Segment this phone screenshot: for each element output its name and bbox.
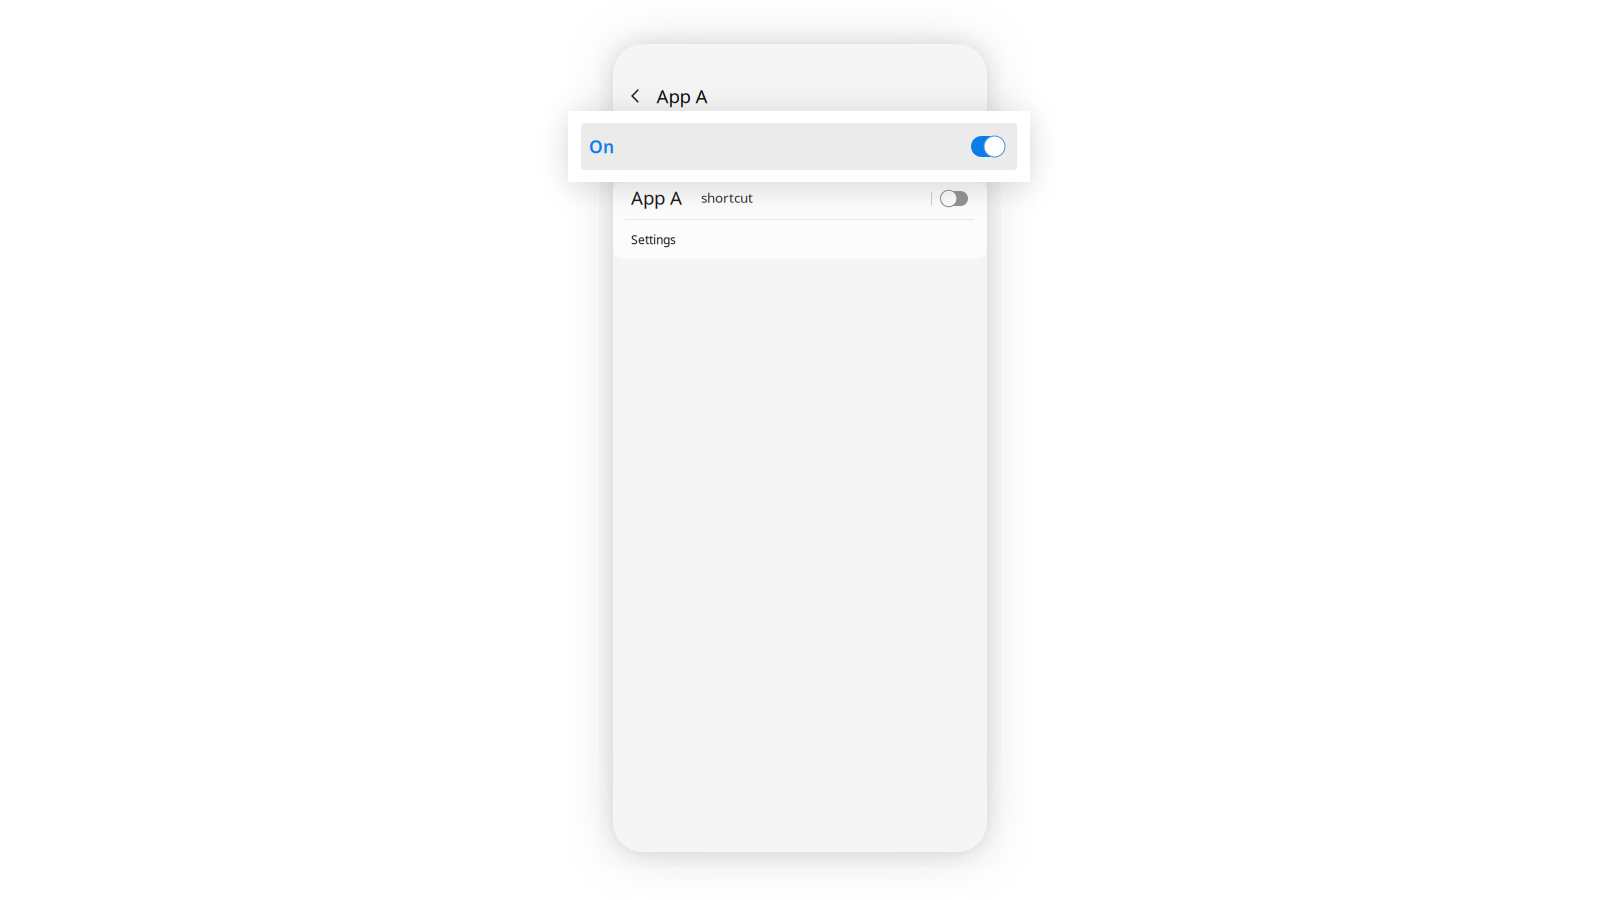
staticText: App A <box>656 84 707 108</box>
button[interactable]: Settings <box>613 220 987 259</box>
button[interactable]: Back to App A <box>613 76 987 116</box>
staticText: Settings <box>631 231 676 247</box>
button[interactable]: On <box>581 123 1017 170</box>
button[interactable]: App A <box>613 182 987 219</box>
staticText: On <box>589 135 614 158</box>
staticText: App A <box>631 185 682 210</box>
staticText: shortcut <box>701 189 753 206</box>
